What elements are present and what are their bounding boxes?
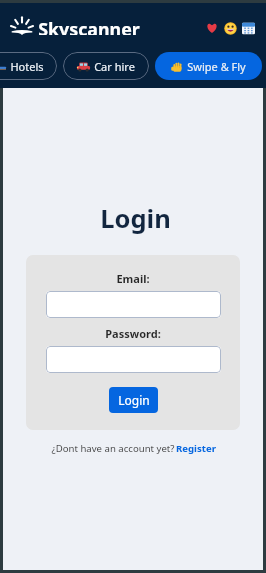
staticText: Email: <box>116 271 150 286</box>
staticText: Swipe & Fly <box>187 59 246 74</box>
staticText: Login <box>100 201 171 236</box>
button[interactable] <box>46 346 221 373</box>
staticText: Skyscanner <box>38 17 140 35</box>
button[interactable]: Hotels <box>0 52 57 80</box>
staticText: Hotels <box>10 59 44 74</box>
button[interactable]: Register <box>176 442 216 455</box>
staticText: Password: <box>105 326 161 341</box>
button[interactable]: Login <box>109 387 158 413</box>
button[interactable]: Car hire <box>63 52 149 80</box>
button[interactable]: Calendar <box>242 22 255 35</box>
staticText: Register <box>176 442 216 455</box>
button[interactable]: Favourites <box>206 22 218 34</box>
staticText: Login <box>118 392 150 408</box>
button[interactable]: Feedback <box>224 22 237 35</box>
button[interactable] <box>46 291 221 318</box>
staticText: ¿Dont have an account yet? <box>50 442 176 455</box>
staticText: Car hire <box>94 59 135 74</box>
button[interactable]: Swipe & Fly <box>155 52 262 80</box>
